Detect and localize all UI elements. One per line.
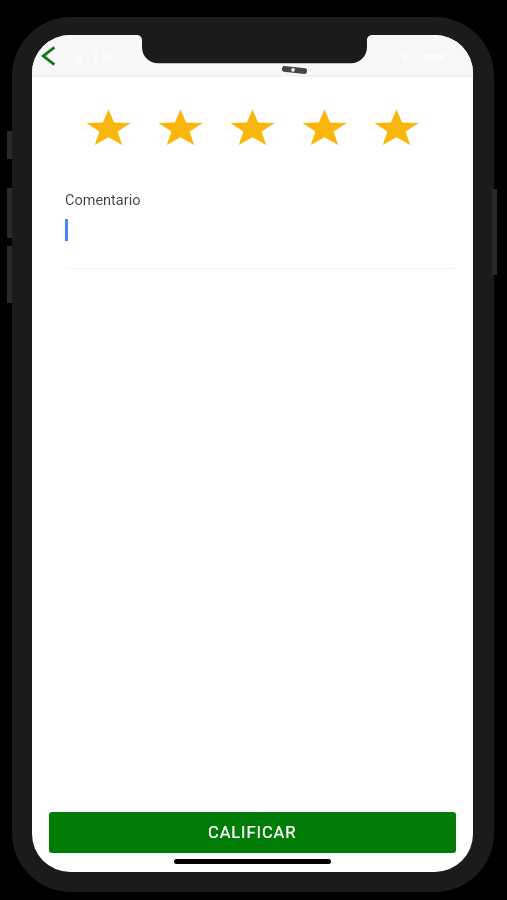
staticText: Comentario bbox=[65, 192, 141, 209]
button[interactable]: CALIFICAR bbox=[49, 812, 456, 853]
staticText: CALIFICAR bbox=[208, 823, 297, 842]
button[interactable]: Back bbox=[32, 37, 67, 75]
